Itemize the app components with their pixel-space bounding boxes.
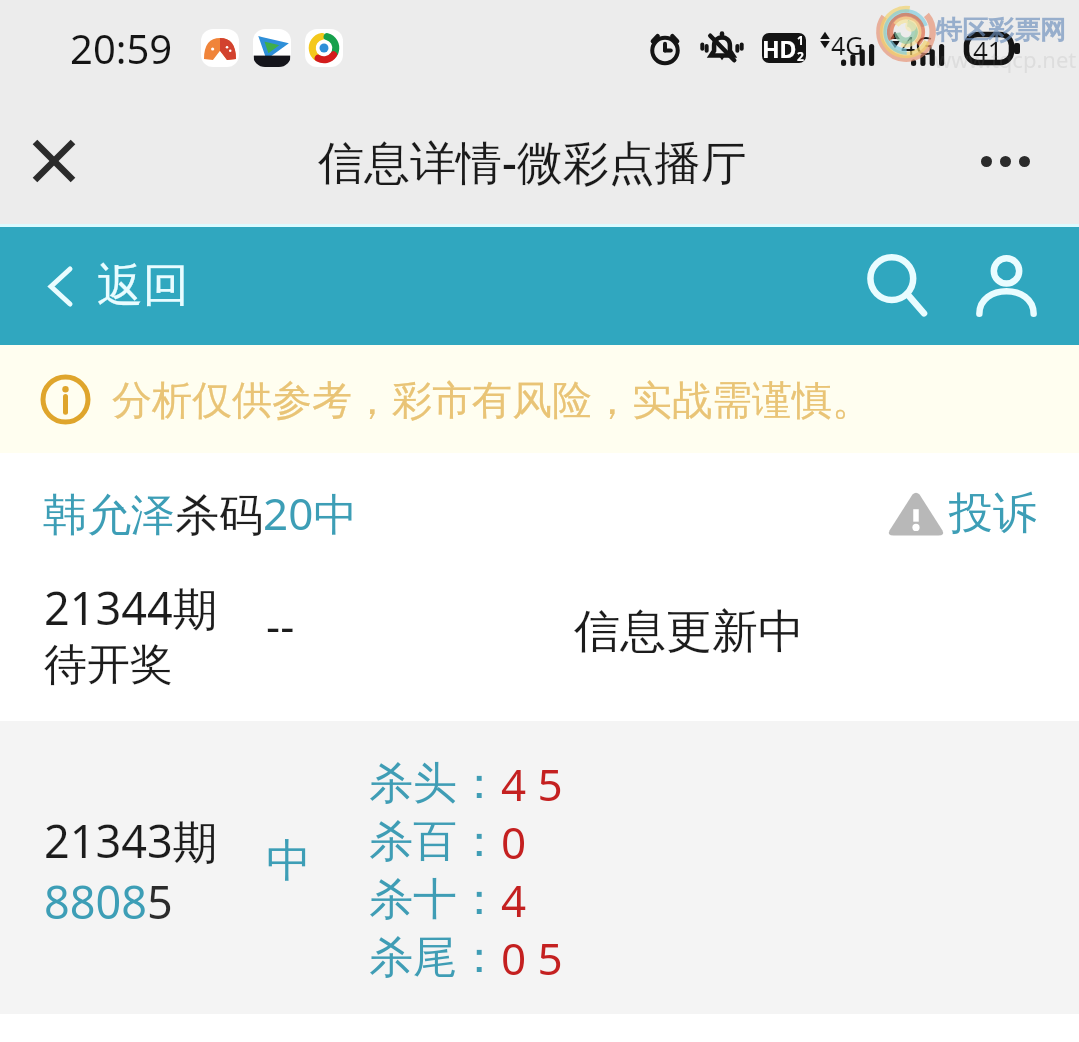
staticText: ：: [457, 814, 501, 869]
staticText: 2: [797, 48, 804, 62]
button[interactable]: Search: [854, 242, 942, 330]
staticText: 返回: [97, 257, 189, 315]
button[interactable]: More options: [967, 123, 1043, 199]
staticText: --: [266, 595, 295, 655]
staticText: 4 5: [501, 754, 563, 812]
staticText: ：: [457, 872, 501, 927]
staticText: 21344期: [44, 577, 218, 638]
button[interactable]: 返回: [48, 257, 189, 315]
staticText: 21343期: [44, 810, 218, 871]
staticText: 4G: [831, 28, 864, 62]
staticText: 0: [501, 812, 527, 870]
button[interactable]: 投诉: [888, 486, 1037, 541]
staticText: ：: [457, 930, 501, 985]
staticText: 20:59: [70, 21, 173, 75]
staticText: 杀十: [369, 872, 457, 927]
staticText: ：: [457, 756, 501, 811]
staticText: 4G: [901, 28, 934, 62]
staticText: 信息详情-微彩点播厅: [318, 130, 747, 193]
staticText: HD: [762, 33, 797, 63]
staticText: 1: [797, 33, 804, 48]
staticText: 分析仅供参考，彩市有风险，实战需谨慎。: [112, 375, 872, 425]
staticText: 88085: [44, 871, 173, 932]
staticText: 杀百: [369, 814, 457, 869]
staticText: 投诉: [949, 486, 1037, 541]
staticText: 4: [501, 870, 527, 928]
staticText: 0 5: [501, 928, 563, 986]
staticText: 待开奖: [44, 638, 173, 692]
button[interactable]: Close: [17, 124, 91, 198]
button[interactable]: Profile: [962, 242, 1050, 330]
staticText: 41: [973, 32, 1003, 65]
staticText: 信息更新中: [574, 603, 804, 661]
staticText: 杀头: [369, 756, 457, 811]
staticText: www.tqcp.net: [934, 44, 1077, 74]
staticText: 中: [266, 833, 311, 890]
staticText: 特区彩票网: [936, 14, 1066, 47]
staticText: 韩允泽杀码20中: [43, 483, 358, 543]
staticText: 杀尾: [369, 930, 457, 985]
